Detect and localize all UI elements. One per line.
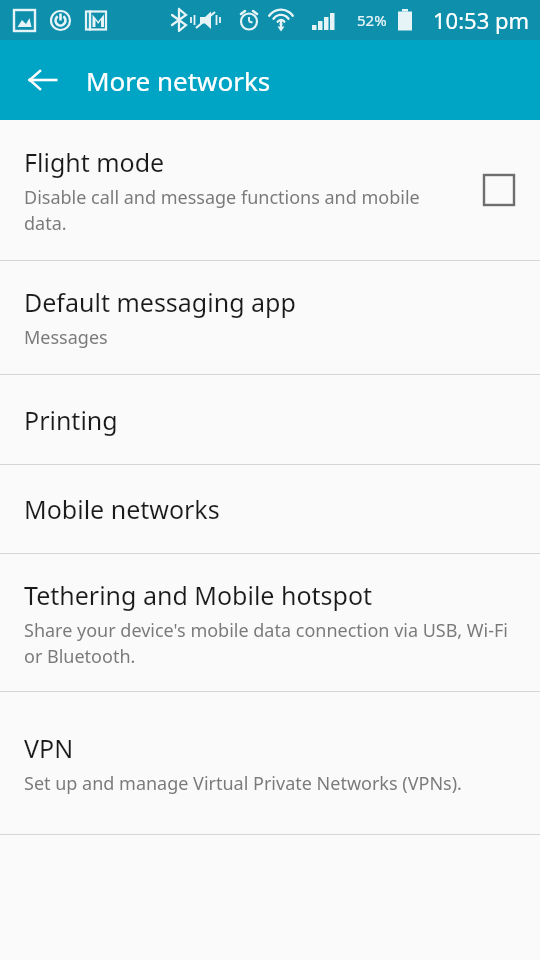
staticText: 52% (357, 10, 387, 30)
staticText: Set up and manage Virtual Private Networ… (24, 771, 462, 796)
button[interactable]: Printing (0, 375, 540, 464)
staticText: Flight mode (24, 145, 165, 179)
button[interactable]: Mobile networks (0, 465, 540, 553)
button[interactable]: VPN (0, 692, 540, 834)
staticText: Printing (24, 403, 118, 437)
staticText: More networks (86, 63, 271, 98)
button[interactable]: Navigate up (14, 51, 72, 109)
staticText: Tethering and Mobile hotspot (24, 578, 373, 612)
button[interactable]: Flight mode (0, 120, 540, 260)
staticText: VPN (24, 731, 74, 765)
staticText: Messages (24, 325, 108, 350)
staticText: Disable call and message functions and m… (24, 185, 464, 235)
button[interactable]: Flight mode checkbox (476, 167, 522, 213)
staticText: Default messaging app (24, 285, 296, 319)
button[interactable]: Tethering and Mobile hotspot (0, 554, 540, 691)
staticText: Mobile networks (24, 492, 220, 526)
staticText: Share your device's mobile data connecti… (24, 618, 516, 668)
button[interactable]: Default messaging app (0, 261, 540, 374)
staticText: 10:53 pm (433, 5, 530, 35)
